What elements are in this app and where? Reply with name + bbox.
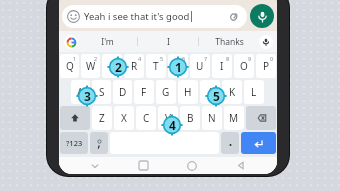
staticText: S	[99, 85, 105, 99]
button[interactable]: G	[156, 80, 176, 104]
staticText: M	[229, 111, 239, 125]
staticText: I	[167, 36, 170, 48]
button[interactable]: W	[81, 54, 100, 78]
button[interactable]: Voice message	[250, 4, 274, 28]
staticText: R	[131, 59, 138, 73]
button[interactable]: Step 4	[161, 114, 183, 136]
staticText: I'm	[101, 36, 114, 48]
staticText: Q	[66, 59, 74, 73]
staticText: A	[77, 85, 84, 99]
staticText: 2	[94, 55, 98, 62]
button[interactable]: Google	[64, 35, 78, 49]
staticText: 6	[182, 55, 186, 62]
staticText: H	[184, 85, 192, 99]
button[interactable]: P	[256, 54, 276, 78]
button[interactable]: Emoji	[62, 5, 247, 28]
button[interactable]: Recents	[119, 157, 167, 174]
staticText: 2	[115, 59, 122, 75]
button[interactable]: I	[212, 54, 232, 78]
button[interactable]: I'm	[78, 31, 137, 52]
button[interactable]: Step 3	[76, 85, 98, 107]
button[interactable]: Attach	[226, 10, 240, 24]
staticText: U	[196, 59, 204, 73]
staticText: W	[86, 59, 96, 73]
staticText: 1	[73, 55, 77, 62]
staticText: X	[121, 111, 127, 125]
staticText: K	[229, 85, 236, 99]
staticText: ?123	[66, 138, 83, 148]
button[interactable]: Step 5	[205, 85, 227, 107]
button[interactable]: D	[113, 80, 132, 104]
staticText: I	[220, 59, 224, 73]
button[interactable]: A	[71, 80, 90, 104]
button[interactable]: Comma	[90, 132, 108, 154]
staticText: T	[153, 59, 159, 73]
button[interactable]: B	[180, 106, 200, 130]
button[interactable]: Voice input	[259, 35, 273, 49]
button[interactable]: Emoji	[67, 10, 80, 23]
staticText: 5	[160, 55, 164, 62]
staticText: 0	[270, 55, 274, 62]
button[interactable]: Step 2	[107, 56, 129, 78]
staticText: G	[162, 85, 170, 99]
staticText: 9	[248, 55, 252, 62]
staticText: 8	[226, 55, 230, 62]
button[interactable]: Step 1	[167, 56, 189, 78]
button[interactable]: L	[244, 80, 264, 104]
button[interactable]: ?123	[60, 132, 88, 154]
button[interactable]: Y	[168, 54, 188, 78]
button[interactable]: E	[102, 54, 122, 78]
staticText: 1	[175, 59, 182, 75]
staticText: C	[143, 111, 150, 125]
button[interactable]: Thanks	[199, 31, 259, 52]
staticText: L	[251, 85, 257, 99]
staticText: P	[263, 59, 270, 73]
staticText: N	[208, 111, 216, 125]
button[interactable]: T	[146, 54, 166, 78]
button[interactable]: Period	[221, 132, 239, 154]
button[interactable]: N	[202, 106, 222, 130]
staticText: Yeah i see that it's good	[84, 10, 190, 23]
button[interactable]: Q	[60, 54, 79, 78]
staticText: V	[165, 111, 171, 125]
button[interactable]: R	[124, 54, 144, 78]
staticText: 4	[138, 55, 142, 62]
staticText: B	[187, 111, 194, 125]
button[interactable]: C	[136, 106, 156, 130]
button[interactable]: H	[178, 80, 198, 104]
button[interactable]: U	[190, 54, 210, 78]
staticText: 7	[204, 55, 208, 62]
button[interactable]: Backspace	[246, 106, 276, 130]
staticText: 5	[213, 88, 220, 104]
button[interactable]: I	[138, 31, 198, 52]
button[interactable]: Enter	[241, 132, 276, 154]
staticText: Y	[175, 59, 181, 73]
button[interactable]: Hide keyboard	[71, 157, 119, 174]
button[interactable]: X	[114, 106, 134, 130]
staticText: 4	[169, 117, 176, 133]
button[interactable]: J	[200, 80, 220, 104]
button[interactable]: Home	[167, 157, 216, 174]
button[interactable]: Back	[216, 157, 265, 174]
button[interactable]: F	[134, 80, 154, 104]
button[interactable]: V	[158, 106, 178, 130]
button[interactable]: Shift	[60, 106, 90, 130]
staticText: J	[209, 85, 212, 99]
button[interactable]: K	[222, 80, 242, 104]
staticText: E	[109, 59, 115, 73]
staticText: O	[240, 59, 248, 73]
button[interactable]: Space	[110, 132, 219, 154]
button[interactable]: M	[224, 106, 244, 130]
button[interactable]: Z	[92, 106, 112, 130]
button[interactable]: O	[234, 54, 254, 78]
staticText: Thanks	[215, 36, 244, 48]
staticText: Z	[99, 111, 105, 125]
staticText: D	[119, 85, 127, 99]
staticText: 3	[84, 88, 91, 104]
staticText: 3	[116, 55, 120, 62]
staticText: F	[141, 85, 147, 99]
button[interactable]: S	[92, 80, 111, 104]
